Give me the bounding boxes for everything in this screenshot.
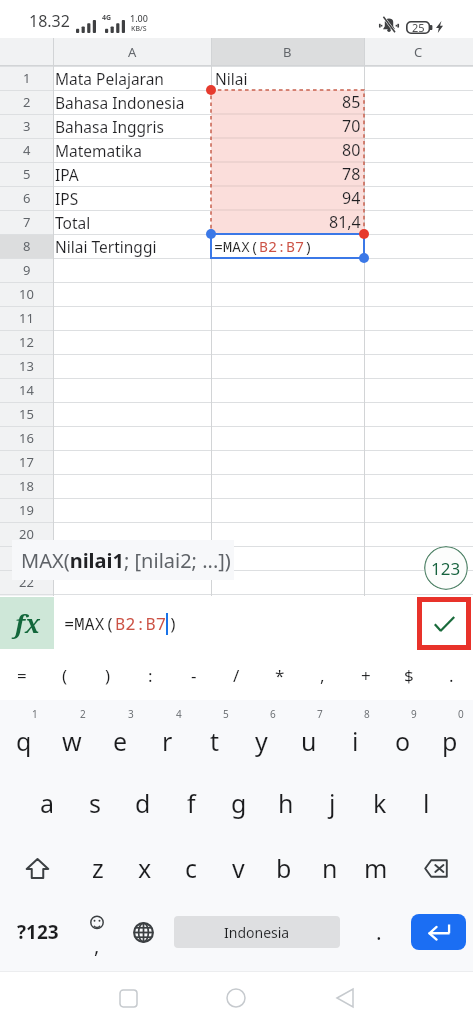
button[interactable]: l <box>403 770 450 836</box>
button[interactable]: u <box>285 705 332 771</box>
button[interactable]: 8 <box>0 234 53 258</box>
button[interactable]: o <box>379 705 426 771</box>
button[interactable]: Back <box>321 974 369 1022</box>
staticText: IPS <box>55 188 79 209</box>
button[interactable]: q <box>0 705 48 771</box>
button[interactable]: Shift <box>0 835 74 901</box>
button[interactable]: ) <box>86 650 129 700</box>
button[interactable]: c <box>168 835 215 901</box>
button[interactable]: Mata Pelajaran <box>53 66 211 90</box>
button[interactable]: C <box>364 38 473 66</box>
button[interactable]: 3 <box>0 114 53 138</box>
button[interactable]: Bahasa Indonesia <box>53 90 211 114</box>
button[interactable]: 1 <box>0 66 53 90</box>
button[interactable]: j <box>309 770 356 836</box>
button[interactable]: - <box>172 650 215 700</box>
staticText: a <box>40 786 55 820</box>
button[interactable]: v <box>215 835 261 901</box>
button[interactable]: 22 <box>0 570 53 594</box>
button[interactable]: k <box>356 770 403 836</box>
button[interactable]: g <box>215 770 262 836</box>
button[interactable]: d <box>119 770 167 836</box>
staticText: u <box>301 724 317 758</box>
button[interactable]: Change language <box>119 900 167 964</box>
button[interactable]: IPA <box>53 162 211 186</box>
button[interactable]: Home <box>212 974 260 1022</box>
button[interactable]: =MAX(B2:B7) <box>211 234 364 258</box>
button[interactable]: Accept formula <box>422 602 466 645</box>
button[interactable]: Recent apps <box>104 974 152 1022</box>
button[interactable]: : <box>129 650 172 700</box>
button[interactable]: Emoji <box>75 900 119 964</box>
staticText: h <box>278 786 294 820</box>
button[interactable]: m <box>353 835 399 901</box>
button[interactable]: b <box>261 835 307 901</box>
button[interactable]: * <box>258 650 301 700</box>
button[interactable]: ( <box>43 650 86 700</box>
button[interactable]: 13 <box>0 354 53 378</box>
button[interactable]: / <box>215 650 258 700</box>
button[interactable]: 5 <box>0 162 53 186</box>
button[interactable]: 85 <box>211 90 364 114</box>
staticText: d <box>135 786 151 820</box>
button[interactable]: n <box>307 835 353 901</box>
button[interactable]: 10 <box>0 282 53 306</box>
button[interactable]: 18 <box>0 474 53 498</box>
button[interactable]: 94 <box>211 186 364 210</box>
button[interactable]: Indonesia <box>174 916 340 948</box>
button[interactable]: y <box>238 705 285 771</box>
button[interactable]: 15 <box>0 402 53 426</box>
button[interactable]: + <box>344 650 387 700</box>
button[interactable]: , <box>301 650 344 700</box>
button[interactable]: f <box>167 770 215 836</box>
button[interactable]: Insert function <box>0 597 54 649</box>
button[interactable]: Matematika <box>53 138 211 162</box>
button[interactable]: 11 <box>0 306 53 330</box>
button[interactable]: 4 <box>0 138 53 162</box>
button[interactable]: 81,4 <box>211 210 364 234</box>
button[interactable]: Number format <box>424 546 468 590</box>
button[interactable]: a <box>23 770 71 836</box>
button[interactable]: 16 <box>0 426 53 450</box>
button[interactable]: z <box>74 835 121 901</box>
button[interactable]: 2 <box>0 90 53 114</box>
button[interactable]: r <box>144 705 191 771</box>
button[interactable]: Total <box>53 210 211 234</box>
button[interactable]: 19 <box>0 498 53 522</box>
button[interactable]: t <box>191 705 238 771</box>
button[interactable]: . <box>430 650 473 700</box>
button[interactable]: IPS <box>53 186 211 210</box>
button[interactable]: h <box>262 770 309 836</box>
button[interactable]: A <box>53 38 211 66</box>
staticText: 16 <box>19 429 34 447</box>
button[interactable]: Backspace <box>399 835 473 901</box>
button[interactable]: Bahasa Inggris <box>53 114 211 138</box>
button[interactable]: p <box>426 705 473 771</box>
button[interactable]: Enter <box>411 914 466 950</box>
button[interactable]: e <box>96 705 144 771</box>
button[interactable]: 12 <box>0 330 53 354</box>
button[interactable]: s <box>71 770 119 836</box>
button[interactable]: . <box>347 900 411 964</box>
button[interactable]: Nilai <box>211 66 364 90</box>
button[interactable]: w <box>48 705 96 771</box>
button[interactable]: 9 <box>0 258 53 282</box>
button[interactable]: 70 <box>211 114 364 138</box>
button[interactable]: MAX(nilai1; [nilai2; ...]) <box>12 540 234 580</box>
button[interactable]: Nilai Tertinggi <box>53 234 211 258</box>
button[interactable]: 78 <box>211 162 364 186</box>
button[interactable]: ?123 <box>0 900 75 964</box>
button[interactable]: $ <box>387 650 430 700</box>
button[interactable]: x <box>121 835 168 901</box>
staticText: MAX(nilai1; [nilai2; ...]) <box>21 547 231 574</box>
button[interactable]: = <box>0 650 43 700</box>
button[interactable]: 21 <box>0 546 53 570</box>
button[interactable]: 80 <box>211 138 364 162</box>
button[interactable]: 6 <box>0 186 53 210</box>
button[interactable]: 20 <box>0 522 53 546</box>
button[interactable]: 17 <box>0 450 53 474</box>
button[interactable]: i <box>332 705 379 771</box>
button[interactable]: 7 <box>0 210 53 234</box>
button[interactable]: 14 <box>0 378 53 402</box>
button[interactable]: B <box>211 38 364 66</box>
